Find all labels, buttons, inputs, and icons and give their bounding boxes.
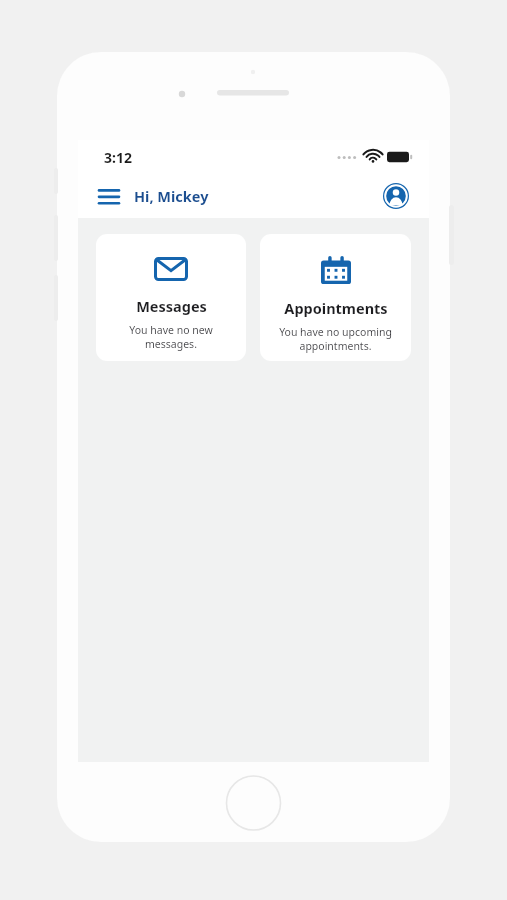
staticText: Appointments (284, 298, 388, 318)
staticText: You have no upcoming (279, 325, 392, 339)
staticText: 3:12 (104, 148, 132, 167)
button[interactable]: Hi, Mickey (134, 186, 209, 206)
button[interactable]: Open navigation menu (96, 183, 122, 209)
button[interactable]: Profile (381, 181, 411, 211)
staticText: Messages (136, 296, 207, 316)
staticText: You have no new (129, 323, 213, 337)
staticText: appointments. (299, 339, 372, 353)
button[interactable]: Messages (96, 234, 246, 361)
staticText: messages. (145, 337, 197, 351)
button[interactable]: Appointments (260, 234, 411, 361)
